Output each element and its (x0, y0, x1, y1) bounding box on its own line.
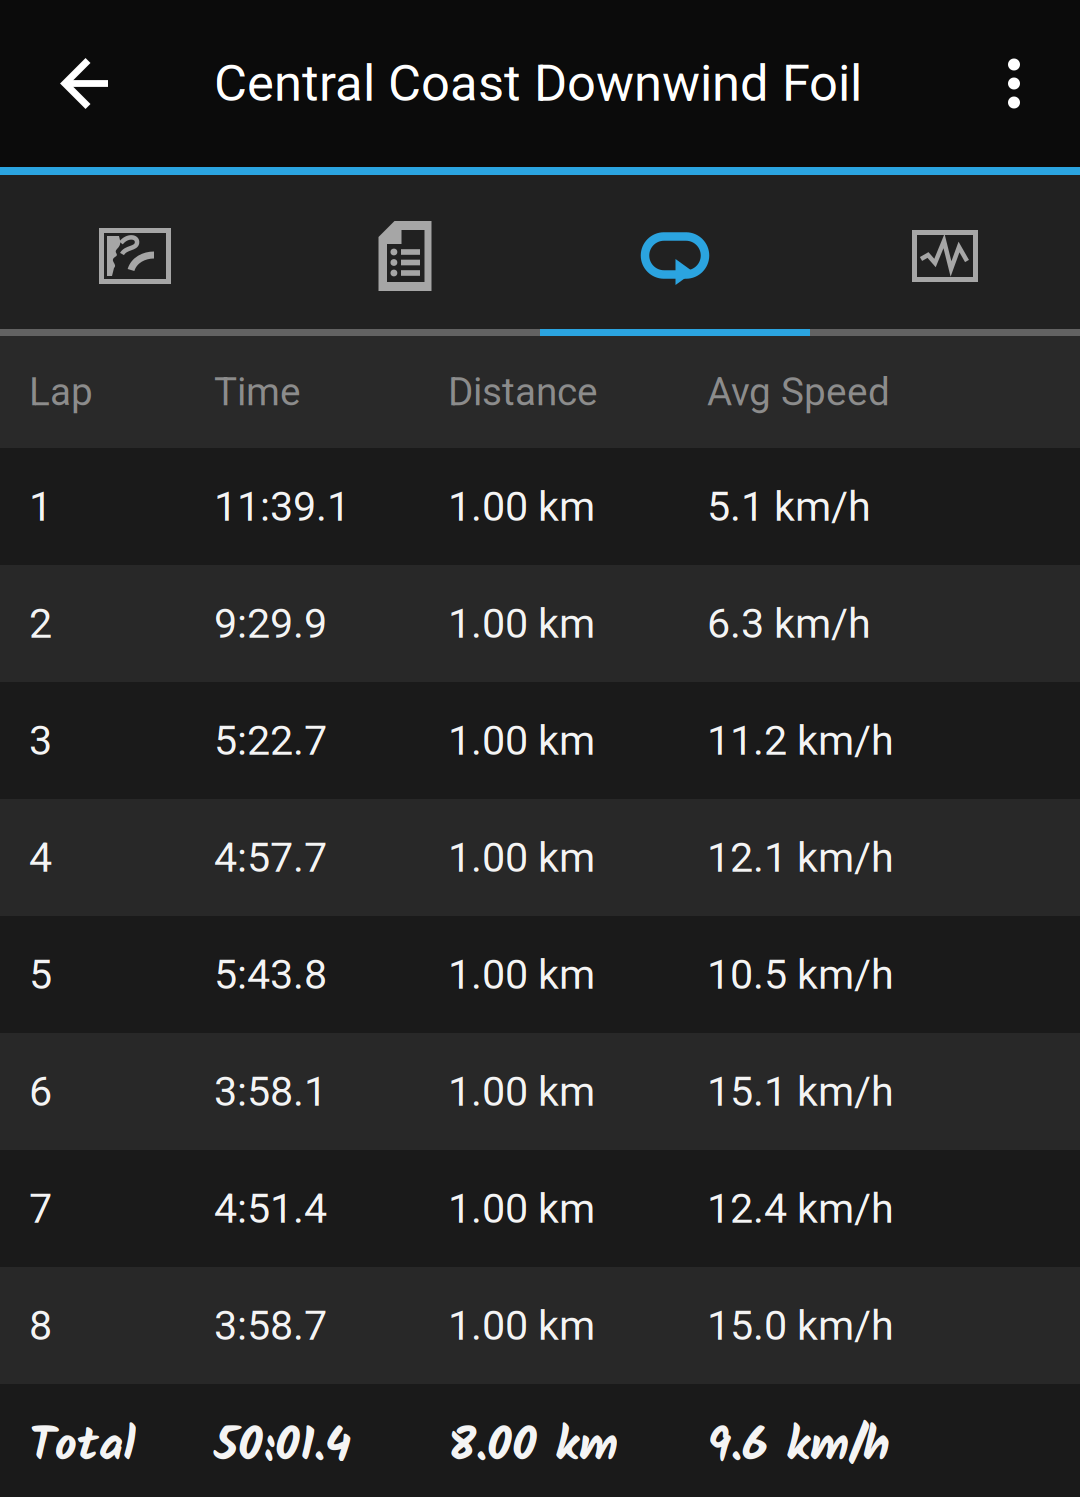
staticText: 3:58.7 (214, 1301, 327, 1350)
button[interactable]: Details (270, 183, 540, 329)
staticText: 15.0 km/h (707, 1301, 894, 1350)
staticText: 1.00 km (448, 482, 595, 531)
staticText: 10.5 km/h (707, 950, 894, 999)
staticText: 9:29.9 (214, 599, 327, 648)
staticText: 1.00 km (448, 1301, 595, 1350)
staticText: 5 (29, 950, 52, 999)
staticText: 8 (29, 1301, 52, 1350)
button[interactable]: Laps (540, 183, 810, 329)
button[interactable]: Back (46, 39, 134, 127)
staticText: 1.00 km (448, 1184, 595, 1233)
staticText: Time (214, 369, 301, 415)
staticText: Distance (448, 369, 598, 415)
staticText: 9.6 km/h (707, 1409, 890, 1486)
staticText: 3 (29, 716, 52, 765)
staticText: 7 (29, 1184, 52, 1233)
staticText: 6.3 km/h (707, 599, 871, 648)
staticText: 4:57.7 (214, 833, 327, 882)
staticText: 11:39.1 (214, 482, 350, 531)
staticText: 1.00 km (448, 833, 595, 882)
staticText: 1.00 km (448, 1067, 595, 1116)
staticText: 6 (29, 1067, 52, 1116)
staticText: 1 (29, 482, 52, 531)
staticText: 12.4 km/h (707, 1184, 894, 1233)
button[interactable]: More options (982, 39, 1046, 127)
staticText: 4 (29, 833, 52, 882)
staticText: Lap (29, 369, 93, 415)
staticText: 8.00 km (448, 1409, 618, 1486)
staticText: 5.1 km/h (707, 482, 871, 531)
staticText: Total (29, 1409, 136, 1486)
staticText: 5:22.7 (214, 716, 327, 765)
staticText: Central Coast Downwind Foil (214, 54, 862, 113)
staticText: 11.2 km/h (707, 716, 894, 765)
staticText: 50:01.4 (214, 1409, 351, 1486)
button[interactable]: Graphs (810, 183, 1080, 329)
button[interactable]: Map (0, 183, 270, 329)
staticText: 3:58.1 (214, 1067, 327, 1116)
staticText: 2 (29, 599, 52, 648)
staticText: 15.1 km/h (707, 1067, 894, 1116)
staticText: 12.1 km/h (707, 833, 894, 882)
staticText: 1.00 km (448, 599, 595, 648)
staticText: 4:51.4 (214, 1184, 327, 1233)
staticText: 5:43.8 (214, 950, 327, 999)
staticText: 1.00 km (448, 716, 595, 765)
staticText: 1.00 km (448, 950, 595, 999)
staticText: Avg Speed (707, 369, 890, 415)
